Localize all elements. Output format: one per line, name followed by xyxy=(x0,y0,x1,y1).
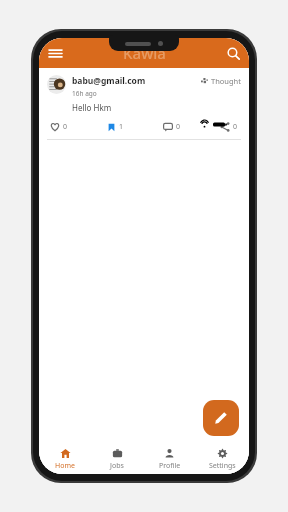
button[interactable]: Menu xyxy=(44,42,66,64)
staticText: 16h ago xyxy=(72,89,97,98)
staticText: Home xyxy=(55,461,75,471)
staticText: Profile xyxy=(159,461,181,471)
button[interactable]: Profile xyxy=(143,444,196,474)
button[interactable]: Comment xyxy=(160,120,184,134)
staticText: Kawia xyxy=(123,43,166,63)
button[interactable]: Share xyxy=(217,120,241,134)
staticText: Hello Hkm xyxy=(72,102,112,113)
button[interactable]: Search xyxy=(222,42,244,64)
button[interactable]: Jobs xyxy=(91,444,143,474)
button[interactable]: Like xyxy=(47,120,71,134)
button[interactable]: babu@gmail.com xyxy=(39,68,249,145)
button[interactable]: Create post xyxy=(203,400,239,436)
staticText: 0 xyxy=(63,122,68,132)
staticText: Settings xyxy=(209,461,236,471)
staticText: 0 xyxy=(233,122,238,132)
staticText: 0 xyxy=(176,122,181,132)
staticText: babu@gmail.com xyxy=(72,75,146,87)
button[interactable]: Settings xyxy=(196,444,249,474)
button[interactable]: Bookmark xyxy=(104,120,127,134)
staticText: Thought xyxy=(211,76,241,86)
button[interactable]: Home xyxy=(39,444,91,474)
staticText: Jobs xyxy=(110,461,124,471)
staticText: 1 xyxy=(119,122,124,132)
